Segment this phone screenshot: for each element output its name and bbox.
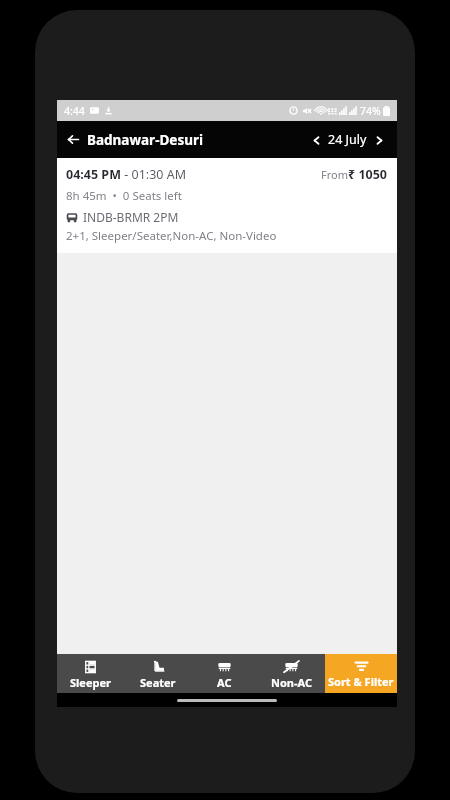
button[interactable]: Sleeper (57, 654, 124, 695)
staticText: 04:45 PM (66, 166, 121, 183)
staticText: AC (217, 675, 232, 690)
staticText: From (321, 167, 348, 182)
button[interactable]: Previous day (307, 131, 325, 149)
button[interactable]: 04:45 PM (57, 158, 397, 253)
button[interactable]: AC (191, 654, 258, 695)
staticText: Badnawar-Desuri (87, 131, 204, 149)
button[interactable]: Sort & Filter (325, 654, 397, 695)
button[interactable]: Back (67, 121, 204, 158)
staticText: 24 July (328, 131, 367, 148)
staticText: Sleeper (70, 675, 111, 690)
staticText: 8h 45m • 0 Seats left (66, 188, 182, 204)
staticText: 74% (360, 104, 381, 118)
staticText: 4:44 (64, 104, 85, 118)
staticText: Seater (140, 675, 176, 690)
button[interactable]: Seater (124, 654, 191, 695)
button[interactable]: Non-AC (258, 654, 325, 695)
button[interactable]: Next day (370, 131, 388, 149)
staticText: Sort & Filter (328, 674, 394, 689)
button[interactable]: 24 July (328, 131, 367, 148)
staticText: Non-AC (271, 675, 312, 690)
staticText: - 01:30 AM (121, 166, 187, 183)
staticText: 2+1, Sleeper/Seater,Non-AC, Non-Video (66, 228, 277, 244)
staticText: ₹ 1050 (348, 166, 388, 183)
staticText: INDB-BRMR 2PM (83, 209, 179, 225)
